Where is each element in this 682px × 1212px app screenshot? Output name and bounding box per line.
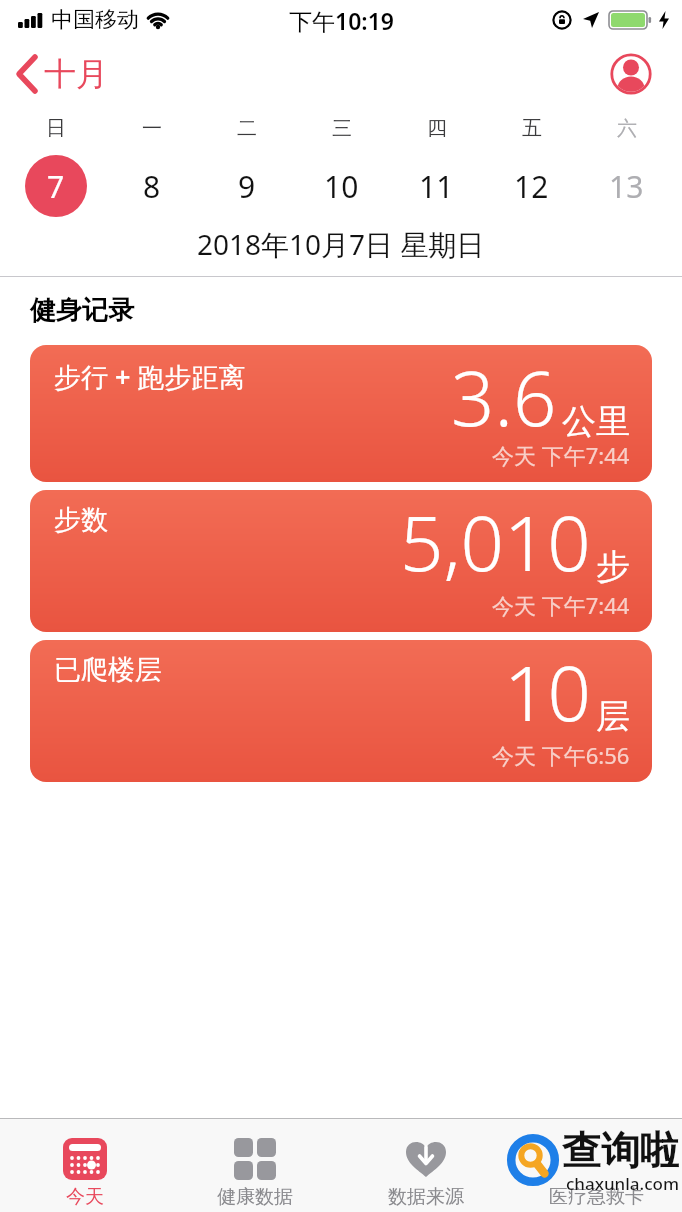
staticText: 层 [596,695,630,738]
button[interactable]: 健康数据 [170,1119,340,1212]
staticText: 今天 下午7:44 [492,590,630,620]
staticText: 10 [324,166,359,207]
button[interactable]: 医疗急救卡 [511,1119,682,1212]
staticText: 健身记录 [30,294,134,327]
staticText: 六 [617,116,637,141]
staticText: 医疗急救卡 [549,1185,644,1209]
button[interactable]: 步数 [30,490,652,632]
staticText: 下午10:19 [289,5,394,36]
staticText: 今天 下午6:56 [492,740,630,770]
staticText: 数据来源 [388,1185,464,1209]
button[interactable]: 11 [389,148,484,224]
button[interactable]: 8 [104,148,199,224]
button[interactable]: 十月 [14,53,108,95]
staticText: 11 [419,166,454,207]
staticText: 健康数据 [217,1185,293,1209]
staticText: 今天 [66,1185,104,1209]
staticText: 2018年10月7日 星期日 [197,225,485,263]
button[interactable]: 13 [579,148,674,224]
staticText: 已爬楼层 [54,653,162,687]
staticText: 今天 下午7:44 [492,440,630,470]
staticText: 步 [596,545,630,588]
staticText: 中国移动 [51,6,139,34]
staticText: 3.6 [451,345,557,449]
staticText: 步行 + 跑步距离 [54,358,246,395]
button[interactable]: 10 [294,148,389,224]
button[interactable]: 已爬楼层 [30,640,652,782]
button[interactable]: 9 [199,148,294,224]
staticText: 9 [238,166,256,207]
staticText: 7 [47,166,65,207]
staticText: 二 [237,116,257,141]
staticText: 12 [514,166,549,207]
button[interactable]: 7 [8,148,104,224]
staticText: 五 [522,116,542,141]
staticText: 一 [142,116,162,141]
staticText: 十月 [44,54,108,94]
staticText: 查询啦 [562,1126,679,1175]
staticText: 8 [143,166,161,207]
button[interactable]: 数据来源 [340,1119,511,1212]
staticText: 5,010 [400,490,591,594]
button[interactable]: 今天 [0,1119,170,1212]
staticText: 13 [609,166,644,207]
staticText: 四 [427,116,447,141]
staticText: 步数 [54,503,108,537]
staticText: 10 [504,640,591,744]
staticText: 日 [46,116,66,141]
staticText: chaxunla.com [566,1172,680,1195]
button[interactable]: 12 [484,148,579,224]
button[interactable] [610,53,652,95]
button[interactable]: 步行 + 跑步距离 [30,345,652,482]
staticText: 三 [332,116,352,141]
staticText: 公里 [562,400,630,443]
